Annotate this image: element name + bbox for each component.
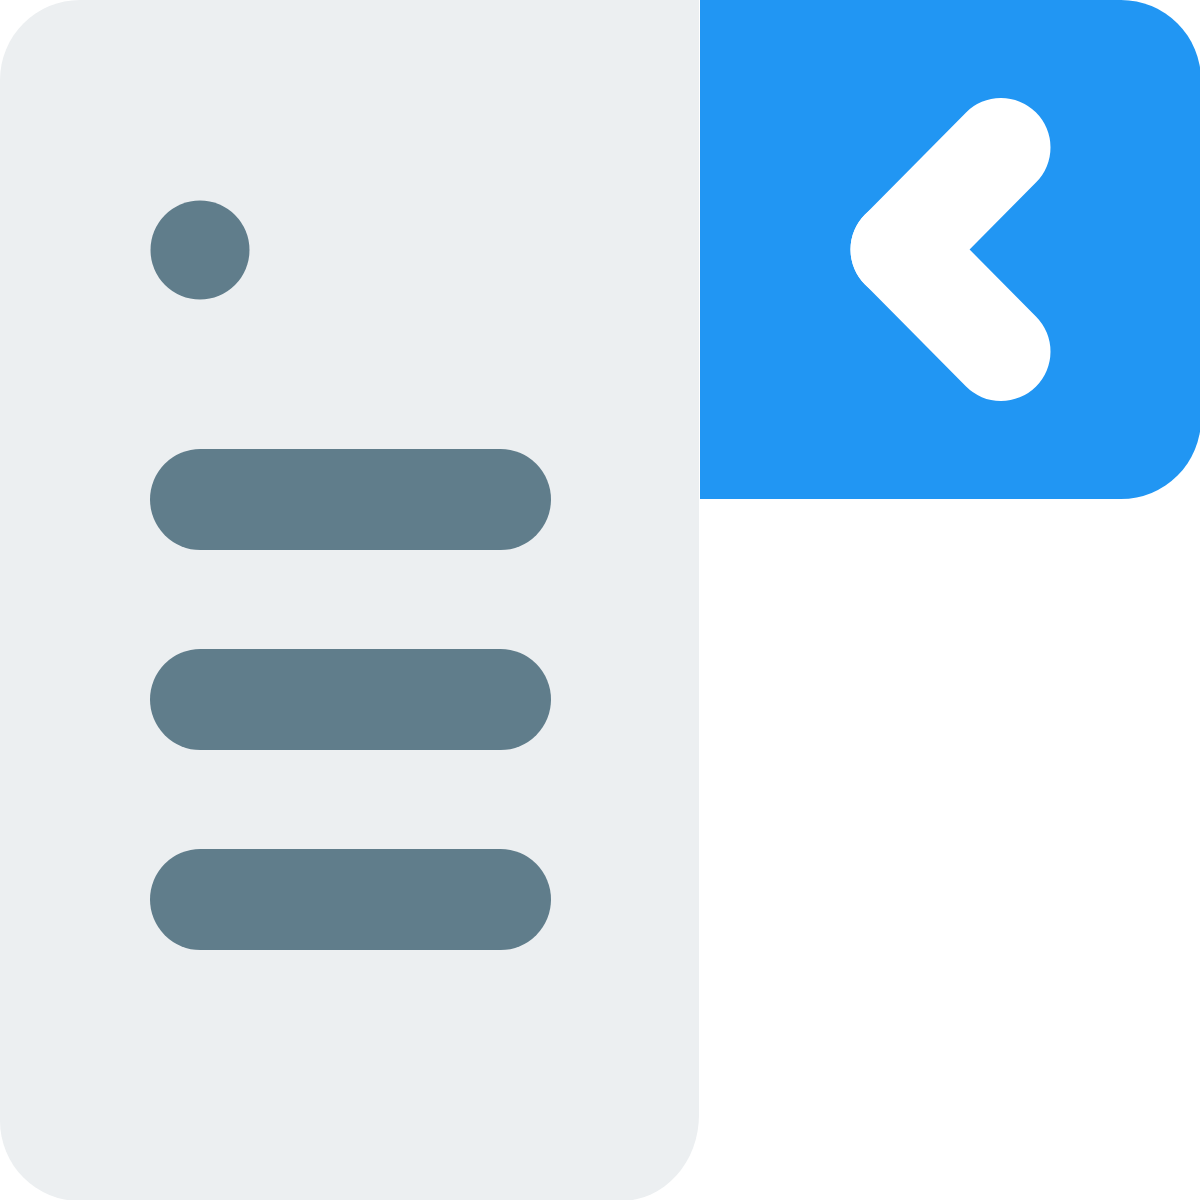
- button[interactable]: Article list: [0, 0, 350, 600]
